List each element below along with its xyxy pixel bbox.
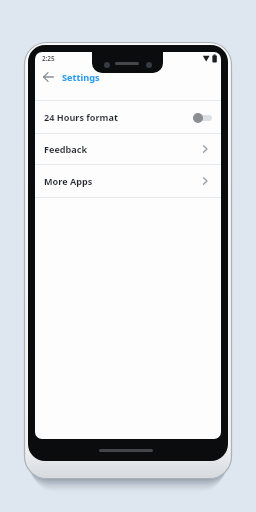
button[interactable]: More Apps: [35, 165, 221, 197]
staticText: Settings: [62, 71, 100, 84]
staticText: 24 Hours format: [44, 111, 118, 123]
staticText: 2:25: [42, 54, 55, 63]
button[interactable]: [39, 69, 57, 85]
button[interactable]: Feedback: [35, 133, 221, 164]
button[interactable]: [193, 112, 212, 123]
button[interactable]: 24 Hours format: [35, 101, 221, 133]
staticText: More Apps: [44, 175, 93, 187]
staticText: Feedback: [44, 143, 88, 155]
